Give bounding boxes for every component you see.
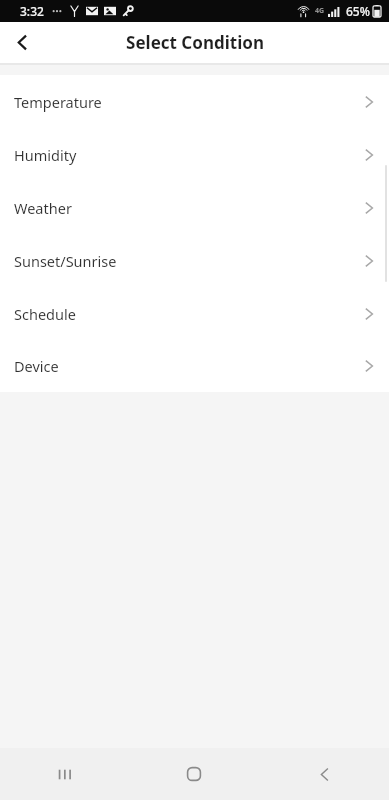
button[interactable]: Device: [0, 340, 389, 392]
staticText: Select Condition: [126, 31, 264, 54]
button[interactable]: Humidity: [0, 128, 389, 181]
button[interactable]: Back: [259, 748, 389, 800]
staticText: Weather: [14, 198, 72, 218]
staticText: 3:32: [20, 3, 44, 19]
button[interactable]: Back: [0, 22, 44, 63]
staticText: 4G: [315, 6, 325, 16]
staticText: Humidity: [14, 145, 77, 165]
button[interactable]: Home: [129, 748, 259, 800]
staticText: Temperature: [14, 92, 102, 112]
button[interactable]: Temperature: [0, 75, 389, 128]
button[interactable]: Recent apps: [0, 748, 129, 800]
staticText: Device: [14, 356, 59, 376]
button[interactable]: Sunset/Sunrise: [0, 234, 389, 287]
staticText: Schedule: [14, 304, 76, 324]
button[interactable]: Weather: [0, 181, 389, 234]
button[interactable]: Schedule: [0, 287, 389, 340]
staticText: 65%: [346, 3, 370, 19]
staticText: Sunset/Sunrise: [14, 251, 117, 271]
